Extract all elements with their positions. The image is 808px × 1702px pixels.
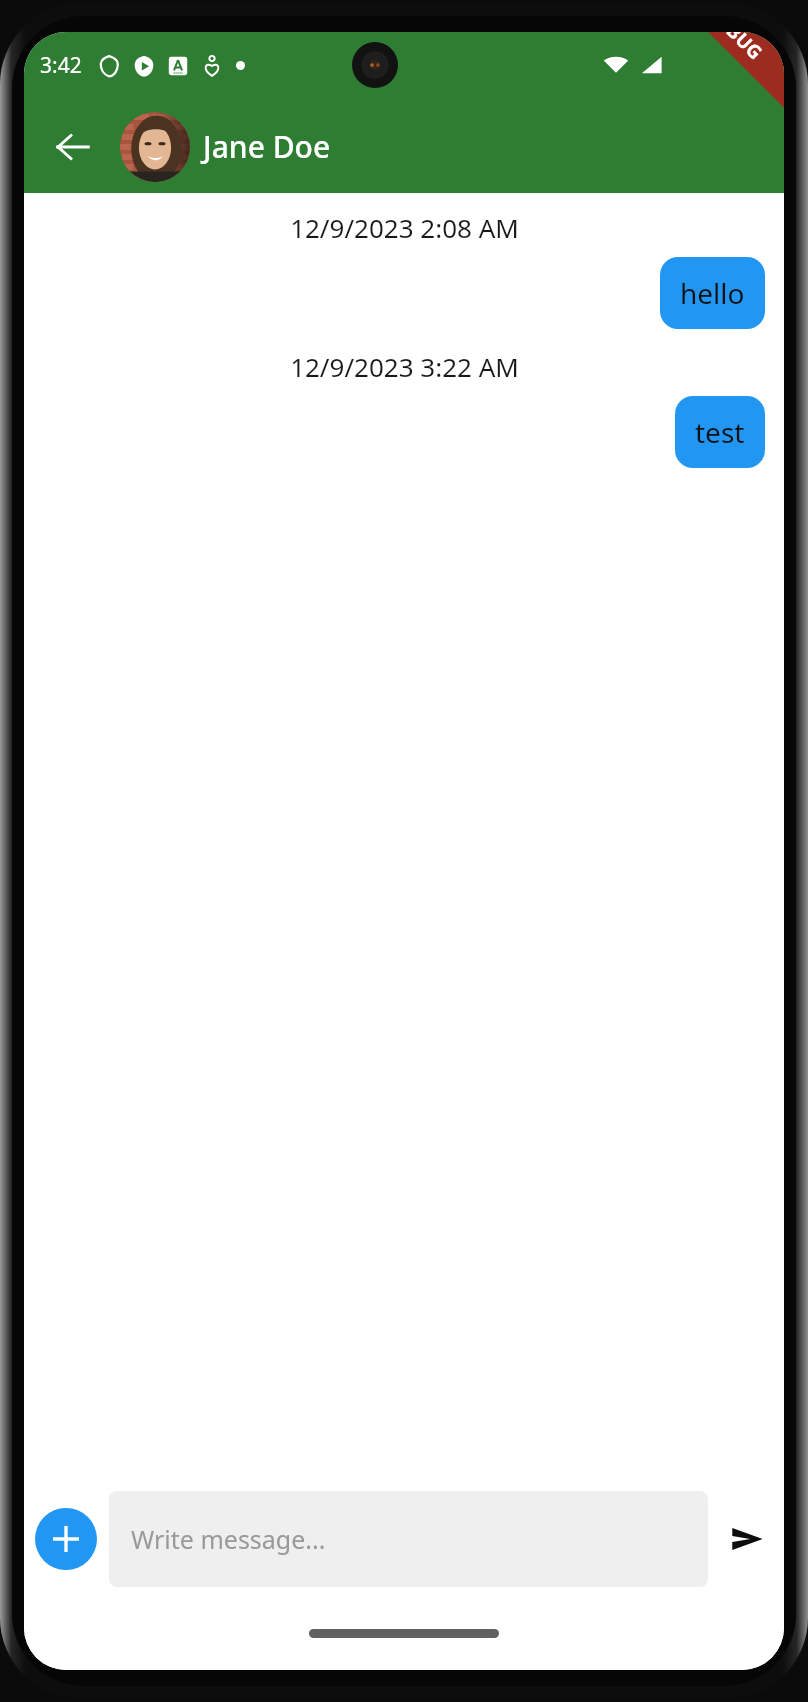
button[interactable]: Back	[44, 118, 102, 176]
staticText: DEBUG	[703, 32, 769, 65]
staticText: 12/9/2023 3:22 AM	[290, 349, 519, 384]
staticText: 3:42	[40, 51, 82, 80]
button[interactable]: Contact photo	[120, 112, 190, 182]
staticText: test	[695, 413, 745, 451]
staticText: 12/9/2023 2:08 AM	[290, 210, 519, 245]
staticText: hello	[680, 274, 745, 312]
button[interactable]: hello	[660, 257, 765, 329]
staticText: Write message...	[131, 1522, 326, 1556]
button[interactable]: Add attachment	[35, 1508, 97, 1570]
staticText: Jane Doe	[203, 126, 331, 167]
button[interactable]: Write message...	[109, 1491, 708, 1587]
button[interactable]: test	[675, 396, 765, 468]
button[interactable]: Send	[716, 1508, 778, 1570]
